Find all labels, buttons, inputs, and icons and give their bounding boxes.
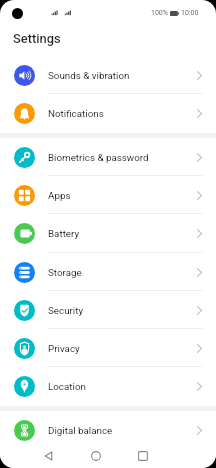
button[interactable]: Biometrics & password: [0, 138, 216, 176]
button[interactable]: Location: [0, 367, 216, 406]
staticText: Biometrics & password: [48, 152, 149, 163]
button[interactable]: Notifications: [0, 94, 216, 133]
staticText: Apps: [48, 190, 71, 201]
button[interactable]: Security: [0, 291, 216, 329]
button[interactable]: Back: [38, 445, 60, 467]
button[interactable]: Apps: [0, 176, 216, 214]
button[interactable]: Storage: [0, 253, 216, 291]
button[interactable]: Home: [85, 445, 107, 467]
button[interactable]: Battery: [0, 214, 216, 253]
staticText: 10:00: [181, 9, 199, 17]
staticText: Sounds & vibration: [48, 70, 130, 81]
button[interactable]: Privacy: [0, 329, 216, 367]
staticText: Security: [48, 305, 84, 316]
staticText: Battery: [48, 228, 80, 239]
staticText: Settings: [13, 31, 61, 46]
button[interactable]: Digital balance: [0, 411, 216, 449]
staticText: Digital balance: [48, 425, 113, 436]
staticText: Location: [48, 381, 86, 392]
button[interactable]: Recent apps: [132, 445, 154, 467]
button[interactable]: Sounds & vibration: [0, 56, 216, 94]
staticText: Storage: [48, 267, 82, 278]
staticText: 100%: [151, 9, 168, 17]
staticText: Notifications: [48, 108, 104, 119]
staticText: Privacy: [48, 343, 80, 354]
